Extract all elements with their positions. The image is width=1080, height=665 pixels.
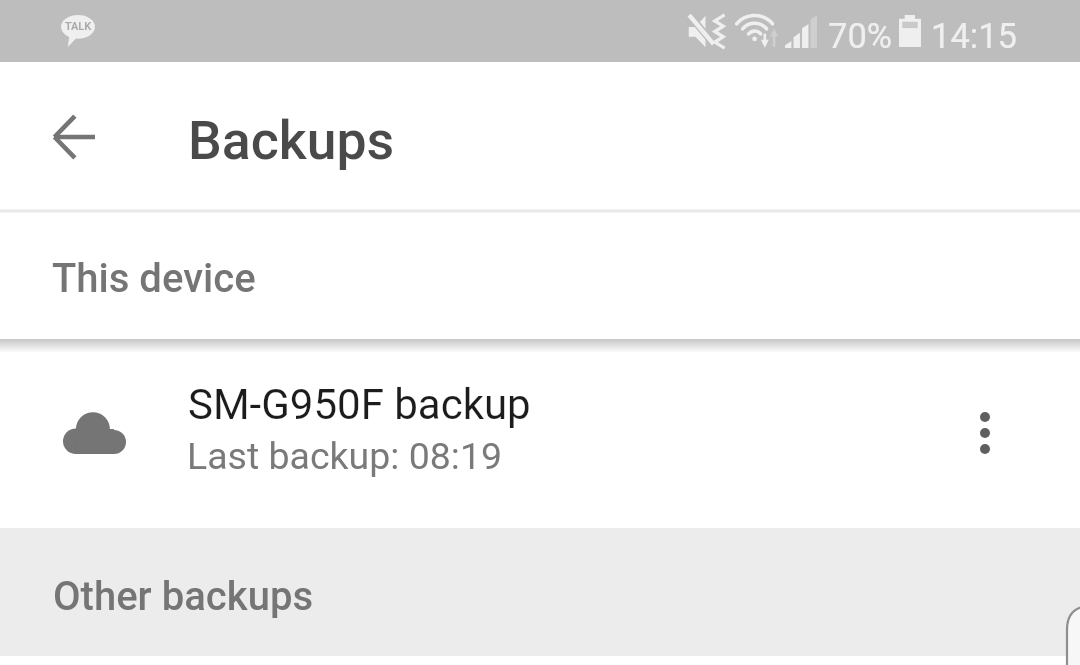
staticText: SM-G950F backup bbox=[188, 380, 531, 429]
staticText: TALK bbox=[65, 20, 92, 33]
staticText: This device bbox=[52, 255, 256, 302]
button[interactable]: More options bbox=[937, 385, 1033, 481]
staticText: 70% bbox=[828, 16, 893, 56]
staticText: Backups bbox=[188, 109, 395, 172]
button[interactable]: Back bbox=[26, 89, 122, 185]
staticText: 14:15 bbox=[931, 16, 1017, 56]
staticText: Other backups bbox=[53, 573, 314, 620]
staticText: Last backup: 08:19 bbox=[187, 434, 503, 478]
button[interactable]: SM-G950F backup bbox=[0, 353, 1080, 528]
